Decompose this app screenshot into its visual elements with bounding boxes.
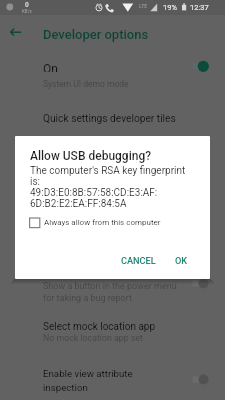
staticText: OK — [175, 255, 188, 266]
button[interactable]: Back — [5, 21, 27, 43]
staticText: Show a button in the power menu for taki… — [43, 281, 177, 303]
button[interactable]: System UI demo mode toggle — [188, 58, 214, 76]
staticText: LTE — [139, 3, 148, 9]
staticText: On — [43, 62, 58, 76]
button[interactable]: OK — [169, 250, 194, 271]
button[interactable]: Select mock location app — [43, 321, 156, 343]
staticText: The computer's RSA key fingerprint is: 4… — [30, 165, 186, 210]
staticText: Enable view attribute inspection — [43, 368, 133, 393]
staticText: Select mock location app — [43, 321, 156, 333]
button[interactable]: Toggle — [188, 371, 214, 389]
staticText: No mock location app set — [43, 333, 144, 343]
button[interactable]: Toggle — [188, 275, 214, 293]
button[interactable]: Quick settings developer tiles — [43, 113, 176, 125]
button[interactable]: CANCEL — [115, 250, 162, 271]
staticText: KB/s — [22, 9, 32, 14]
staticText: Quick settings developer tiles — [43, 113, 176, 125]
staticText: 12:37 — [190, 3, 209, 12]
button[interactable]: Always allow from this computer — [29, 216, 161, 228]
staticText: Always allow from this computer — [44, 218, 161, 227]
staticText: 19% — [163, 3, 177, 12]
staticText: 0 — [25, 1, 29, 9]
staticText: Allow USB debugging? — [30, 149, 152, 163]
staticText: System UI demo mode — [43, 79, 129, 89]
staticText: Developer options — [43, 27, 149, 42]
staticText: CANCEL — [121, 255, 156, 266]
button[interactable]: On — [43, 62, 58, 76]
